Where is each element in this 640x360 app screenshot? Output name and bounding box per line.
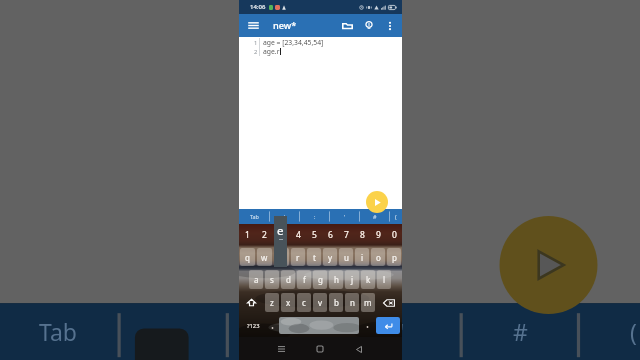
button[interactable]: u xyxy=(339,248,353,266)
button[interactable]: b xyxy=(329,293,343,312)
staticText: v xyxy=(318,297,323,308)
button[interactable]: v xyxy=(313,293,327,312)
button[interactable]: Home xyxy=(310,339,330,359)
button[interactable]: # xyxy=(360,209,389,224)
button[interactable]: 6 xyxy=(322,224,338,246)
staticText: 1 xyxy=(245,229,250,241)
button[interactable]: 8 xyxy=(354,224,370,246)
staticText: m xyxy=(364,297,372,308)
staticText: x xyxy=(286,297,291,308)
button[interactable]: t xyxy=(307,248,321,266)
staticText: d xyxy=(286,274,291,285)
button[interactable]: y xyxy=(323,248,337,266)
button[interactable]: z xyxy=(265,293,279,312)
button[interactable]: 7 xyxy=(338,224,354,246)
button[interactable]: w xyxy=(257,248,272,266)
button[interactable]: Back xyxy=(349,339,369,359)
button[interactable]: ' xyxy=(330,209,359,224)
button[interactable]: i xyxy=(355,248,369,266)
staticText: 6 xyxy=(328,229,333,241)
button[interactable]: Open file xyxy=(337,14,358,37)
staticText: | xyxy=(283,213,286,220)
button[interactable]: j xyxy=(345,270,359,289)
button[interactable]: 4 xyxy=(290,224,306,246)
button[interactable]: Open navigation drawer xyxy=(239,14,267,37)
button[interactable]: 3 xyxy=(273,224,290,246)
button[interactable]: 9 xyxy=(370,224,386,246)
button[interactable]: f xyxy=(297,270,311,289)
staticText: p xyxy=(392,252,397,263)
staticText: e xyxy=(277,223,284,239)
button[interactable]: h xyxy=(329,270,343,289)
button[interactable]: 2 xyxy=(256,224,273,246)
button[interactable]: More options xyxy=(379,14,400,37)
staticText: 2 xyxy=(254,48,258,56)
button[interactable]: ( xyxy=(390,209,402,224)
staticText: 4 xyxy=(296,229,301,241)
button[interactable]: 0 xyxy=(386,224,402,246)
staticText: y xyxy=(328,252,333,263)
button[interactable]: d xyxy=(281,270,295,289)
staticText: f xyxy=(303,274,306,285)
button[interactable]: 1 xyxy=(239,224,256,246)
button[interactable]: Recent apps xyxy=(271,339,291,359)
button[interactable]: Shift xyxy=(239,291,264,314)
staticText: j xyxy=(351,274,354,285)
staticText: 14:06 xyxy=(250,3,266,11)
button[interactable]: s xyxy=(265,270,279,289)
button[interactable]: 5 xyxy=(306,224,322,246)
staticText: s xyxy=(270,274,274,285)
staticText: age = [23,34,45,54] xyxy=(263,38,324,47)
staticText: ' xyxy=(399,316,405,347)
button[interactable]: : xyxy=(300,209,329,224)
staticText: 1 xyxy=(254,39,258,47)
button[interactable]: p xyxy=(387,248,401,266)
staticText: b xyxy=(334,297,339,308)
button[interactable]: n xyxy=(345,293,359,312)
staticText: ' xyxy=(344,213,346,220)
button[interactable]: k xyxy=(361,270,375,289)
staticText: # xyxy=(513,316,528,347)
staticText: ( xyxy=(630,316,637,347)
staticText: ?123 xyxy=(247,322,260,330)
button[interactable]: Period xyxy=(362,314,372,337)
button[interactable]: x xyxy=(281,293,295,312)
button[interactable]: q xyxy=(240,248,255,266)
button[interactable]: Hints xyxy=(358,14,379,37)
staticText: q xyxy=(245,252,250,263)
button[interactable]: Enter xyxy=(376,317,400,334)
staticText: ( xyxy=(395,213,397,220)
button[interactable]: Comma xyxy=(268,314,276,337)
staticText: 5 xyxy=(312,229,317,241)
staticText: 2 xyxy=(262,229,267,241)
staticText: 8 xyxy=(360,229,365,241)
button[interactable]: a xyxy=(249,270,263,289)
staticText: Tab xyxy=(250,213,259,220)
button[interactable]: Space xyxy=(279,317,359,334)
button[interactable]: c xyxy=(297,293,311,312)
staticText: z xyxy=(270,297,274,308)
button[interactable]: | xyxy=(270,209,299,224)
staticText: r xyxy=(296,252,300,263)
button[interactable]: o xyxy=(371,248,385,266)
button[interactable]: g xyxy=(313,270,327,289)
staticText: 0 xyxy=(392,229,397,241)
button[interactable]: r xyxy=(291,248,305,266)
button[interactable]: Tab xyxy=(239,209,269,224)
button[interactable]: e xyxy=(274,248,289,266)
button[interactable]: l xyxy=(377,270,391,289)
staticText: u xyxy=(344,252,349,263)
staticText: o xyxy=(376,252,381,263)
staticText: 9 xyxy=(376,229,381,241)
staticText: g xyxy=(318,274,323,285)
button[interactable]: m xyxy=(361,293,375,312)
button[interactable]: Backspace xyxy=(376,291,402,314)
staticText: h xyxy=(334,274,339,285)
button[interactable]: ?123 xyxy=(239,314,268,337)
staticText: w xyxy=(261,252,268,263)
button[interactable]: Run xyxy=(366,191,388,213)
staticText: # xyxy=(373,213,377,220)
staticText: : xyxy=(314,213,316,220)
staticText: Tab xyxy=(39,316,77,347)
